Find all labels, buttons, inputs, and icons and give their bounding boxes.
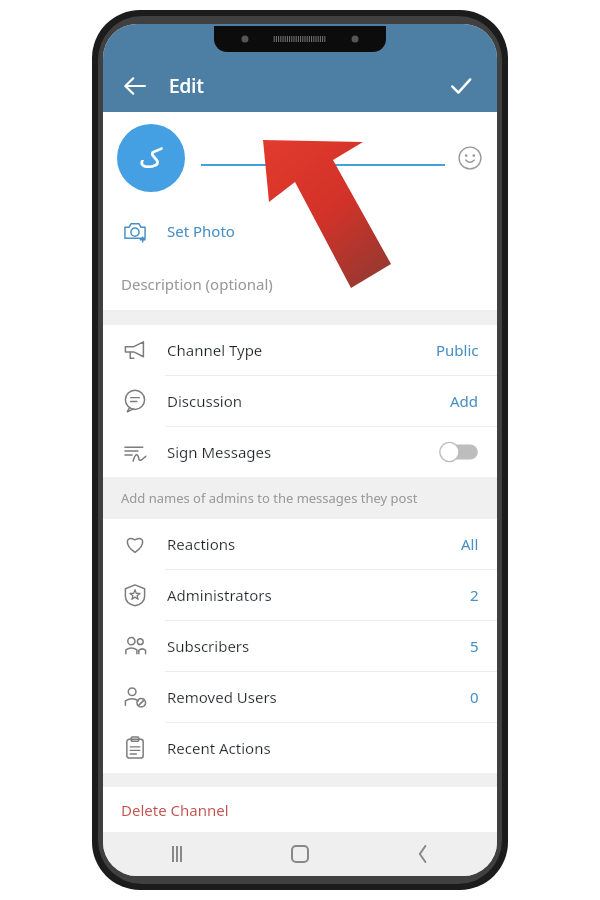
button[interactable]: Back [405,836,441,872]
button[interactable]: Recents [159,836,195,872]
button[interactable]: Channel avatar [117,124,185,192]
staticText: Public [436,340,479,360]
staticText: Administrators [167,585,272,605]
staticText: 0 [470,687,479,707]
staticText: Channel Type [167,340,263,360]
staticText: Subscribers [167,636,250,656]
button[interactable]: Sign Messages [103,427,497,477]
button[interactable]: Home [282,836,318,872]
button[interactable]: Removed Users [103,672,497,722]
button[interactable]: Channel Type [103,325,497,375]
button[interactable]: Recent Actions [103,723,497,773]
staticText: ک [139,143,163,173]
button[interactable]: Subscribers [103,621,497,671]
staticText: Reactions [167,534,236,554]
staticText: Add names of admins to the messages they… [121,489,418,507]
staticText: Set Photo [167,221,235,241]
staticText: Recent Actions [167,738,271,758]
staticText: All [461,534,479,554]
button[interactable]: Description (optional) [103,258,497,310]
button[interactable]: Discussion [103,376,497,426]
staticText: Description (optional) [121,274,273,294]
staticText: Discussion [167,391,243,411]
button[interactable]: Emoji [457,145,483,171]
staticText: 5 [470,636,479,656]
button[interactable]: Delete Channel [103,787,497,832]
button[interactable]: Back [115,66,155,106]
button[interactable]: Done [441,66,481,106]
staticText: Edit [169,73,204,99]
staticText: Removed Users [167,687,277,707]
button[interactable]: Administrators [103,570,497,620]
button[interactable]: Set Photo [103,204,497,258]
staticText: Add [450,391,479,411]
staticText: Delete Channel [121,800,229,820]
staticText: 2 [470,585,479,605]
button[interactable]: Reactions [103,519,497,569]
staticText: Sign Messages [167,442,272,462]
